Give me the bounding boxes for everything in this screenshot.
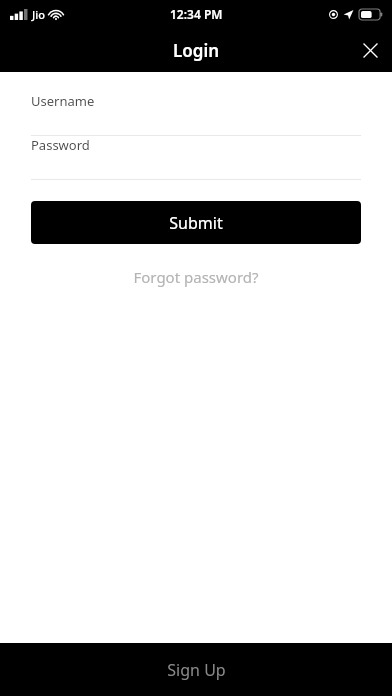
button[interactable]: Forgot password?	[0, 267, 392, 287]
button[interactable]: Submit	[31, 201, 361, 244]
button[interactable]: Username	[31, 92, 361, 136]
staticText: Jio	[32, 7, 45, 22]
staticText: Submit	[169, 212, 223, 234]
staticText: Login	[173, 39, 220, 62]
staticText: Username	[31, 92, 95, 110]
staticText: Sign Up	[167, 659, 226, 681]
button[interactable]: Password	[31, 136, 361, 180]
button[interactable]: Close	[348, 28, 392, 72]
staticText: 12:34 PM	[170, 6, 223, 22]
button[interactable]: Sign Up	[0, 643, 392, 696]
staticText: Password	[31, 136, 90, 154]
staticText: Forgot password?	[133, 267, 259, 287]
